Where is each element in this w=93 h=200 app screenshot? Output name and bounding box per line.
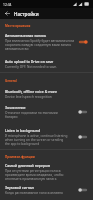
staticText: Отличное подсказки по экономии батареи (5, 111, 58, 119)
button[interactable]: Зачисление (0, 105, 93, 119)
button[interactable]: Back (0, 8, 14, 19)
button[interactable]: Самый длинный перерыв (0, 163, 93, 181)
staticText: General (5, 79, 17, 83)
staticText: Когда распознавание голоса активно (5, 191, 63, 195)
staticText: Auto upload to Drive on save (5, 59, 54, 64)
button[interactable]: Автоматическая запись (0, 33, 93, 51)
button[interactable]: Auto upload to Drive on save (0, 59, 93, 69)
button[interactable]: Listen in background (0, 128, 93, 146)
staticText: Произвол.функции (5, 155, 35, 159)
button[interactable]: Bluetooth, offline voice & more (0, 89, 93, 99)
staticText: Listen in background (5, 128, 41, 133)
staticText: 12:34 (3, 2, 12, 6)
staticText: Зачисление (5, 105, 26, 110)
staticText: Автоматическая запись (5, 33, 47, 38)
staticText: Настройки (14, 11, 39, 17)
staticText: If microphone is active, continue listen… (5, 134, 68, 146)
staticText: Звуковой сигнал (5, 185, 34, 190)
staticText: Currently OFF. Not needed to save. (5, 65, 57, 69)
staticText: При включении Spotify будет автоматическ… (5, 39, 75, 51)
staticText: Самый длинный перерыв (5, 163, 50, 168)
button[interactable]: Звуковой сигнал (0, 185, 93, 195)
staticText: При отсутствии регистрации голоса произв… (5, 169, 64, 181)
staticText: Место хранения (5, 24, 31, 28)
staticText: Bluetooth, offline voice & more (5, 89, 58, 94)
staticText: Device level speech recognition (5, 95, 52, 99)
